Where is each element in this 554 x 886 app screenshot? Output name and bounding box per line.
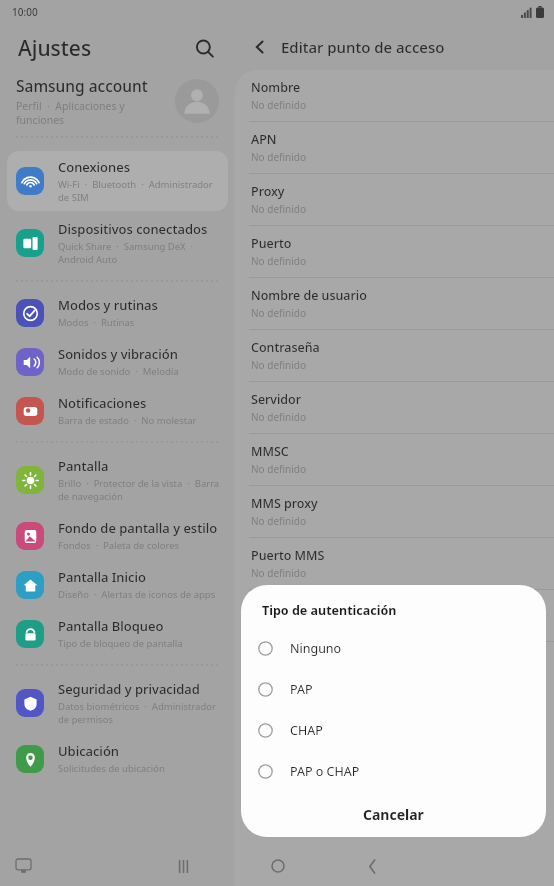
button[interactable]: MCC: [235, 590, 554, 642]
button[interactable]: PAP o CHAP: [241, 751, 546, 792]
button[interactable]: PAP: [241, 669, 546, 710]
button[interactable]: Cancelar: [241, 792, 546, 837]
button[interactable]: Ninguno: [241, 628, 546, 669]
staticText: Conexiones: [58, 158, 130, 176]
staticText: No definido: [251, 254, 307, 268]
staticText: Quick Share · Samsung DeX · Android Auto: [58, 240, 220, 266]
staticText: Servidor: [251, 391, 301, 408]
staticText: Perfil · Aplicaciones y funciones: [16, 99, 175, 127]
staticText: Diseño · Alertas de iconos de apps: [58, 588, 216, 601]
staticText: Wi-Fi · Bluetooth · Administrador de SIM: [58, 178, 220, 204]
staticText: No definido: [251, 462, 307, 476]
staticText: 10:00: [12, 5, 38, 19]
staticText: Notificaciones: [58, 394, 147, 412]
button[interactable]: Contraseña: [235, 330, 554, 382]
button[interactable]: Puerto MMS: [235, 538, 554, 590]
staticText: No definido: [251, 514, 307, 528]
staticText: PAP: [290, 681, 313, 698]
button[interactable]: Modos y rutinas: [7, 289, 228, 336]
staticText: No definido: [251, 150, 307, 164]
staticText: No definido: [251, 202, 307, 216]
staticText: Barra de estado · No molestar: [58, 414, 197, 427]
staticText: Ubicación: [58, 742, 119, 760]
staticText: MCC: [251, 599, 279, 616]
staticText: Datos biométricos · Administrador de per…: [58, 700, 220, 726]
button[interactable]: Pantalla: [7, 450, 228, 510]
staticText: Cancelar: [363, 805, 424, 824]
button[interactable]: Atrás: [355, 849, 389, 883]
button[interactable]: Recientes: [166, 849, 200, 883]
staticText: Contraseña: [251, 339, 320, 356]
staticText: APN: [251, 131, 277, 148]
button[interactable]: Servidor: [235, 382, 554, 434]
staticText: Modo de sonido · Melodía: [58, 365, 179, 378]
staticText: Tipo de bloqueo de pantalla: [58, 637, 183, 650]
button[interactable]: Seguridad y privacidad: [7, 673, 228, 733]
button[interactable]: Fondo de pantalla y estilo: [7, 512, 228, 559]
button[interactable]: Samsung account: [0, 72, 235, 130]
staticText: Modos · Rutinas: [58, 316, 135, 329]
staticText: Puerto MMS: [251, 547, 325, 564]
staticText: Seguridad y privacidad: [58, 680, 200, 698]
staticText: Editar punto de acceso: [281, 37, 445, 57]
staticText: Nombre: [251, 79, 301, 96]
staticText: Proxy: [251, 183, 285, 200]
staticText: No definido: [251, 566, 307, 580]
button[interactable]: MMSC: [235, 434, 554, 486]
button[interactable]: Conexiones: [7, 151, 228, 211]
button[interactable]: Proxy: [235, 174, 554, 226]
button[interactable]: Notificaciones: [7, 387, 228, 434]
staticText: Fondos · Paleta de colores: [58, 539, 180, 552]
staticText: Dispositivos conectados: [58, 220, 208, 238]
staticText: Tipo de autenticación: [262, 602, 397, 619]
staticText: Pantalla Bloqueo: [58, 617, 164, 635]
staticText: Brillo · Protector de la vista · Barra d…: [58, 477, 220, 503]
staticText: MMSC: [251, 443, 289, 460]
staticText: Modos y rutinas: [58, 296, 158, 314]
staticText: Solicitudes de ubicación: [58, 762, 165, 775]
staticText: Pantalla Inicio: [58, 568, 146, 586]
staticText: Puerto: [251, 235, 292, 252]
staticText: Nombre de usuario: [251, 287, 367, 304]
staticText: No definido: [251, 358, 307, 372]
staticText: Ninguno: [290, 640, 342, 657]
staticText: Pantalla: [58, 457, 109, 475]
staticText: CHAP: [290, 722, 323, 739]
staticText: PAP o CHAP: [290, 763, 360, 780]
button[interactable]: Inicio: [261, 849, 295, 883]
staticText: Ajustes: [18, 34, 92, 63]
button[interactable]: MMS proxy: [235, 486, 554, 538]
button[interactable]: Captura de pantalla: [10, 853, 36, 879]
button[interactable]: Ubicación: [7, 735, 228, 782]
button[interactable]: CHAP: [241, 710, 546, 751]
button[interactable]: Dispositivos conectados: [7, 213, 228, 273]
button[interactable]: Atrás: [243, 30, 277, 64]
staticText: No definido: [251, 98, 307, 112]
button[interactable]: Nombre de usuario: [235, 278, 554, 330]
staticText: Samsung account: [16, 75, 148, 96]
button[interactable]: Buscar: [187, 31, 221, 65]
button[interactable]: Pantalla Bloqueo: [7, 610, 228, 657]
staticText: Fondo de pantalla y estilo: [58, 519, 218, 537]
staticText: Sonidos y vibración: [58, 345, 178, 363]
button[interactable]: Sonidos y vibración: [7, 338, 228, 385]
staticText: No definido: [251, 410, 307, 424]
button[interactable]: Pantalla Inicio: [7, 561, 228, 608]
staticText: MMS proxy: [251, 495, 318, 512]
button[interactable]: Puerto: [235, 226, 554, 278]
staticText: No definido: [251, 306, 307, 320]
button[interactable]: Nombre: [235, 70, 554, 122]
button[interactable]: APN: [235, 122, 554, 174]
